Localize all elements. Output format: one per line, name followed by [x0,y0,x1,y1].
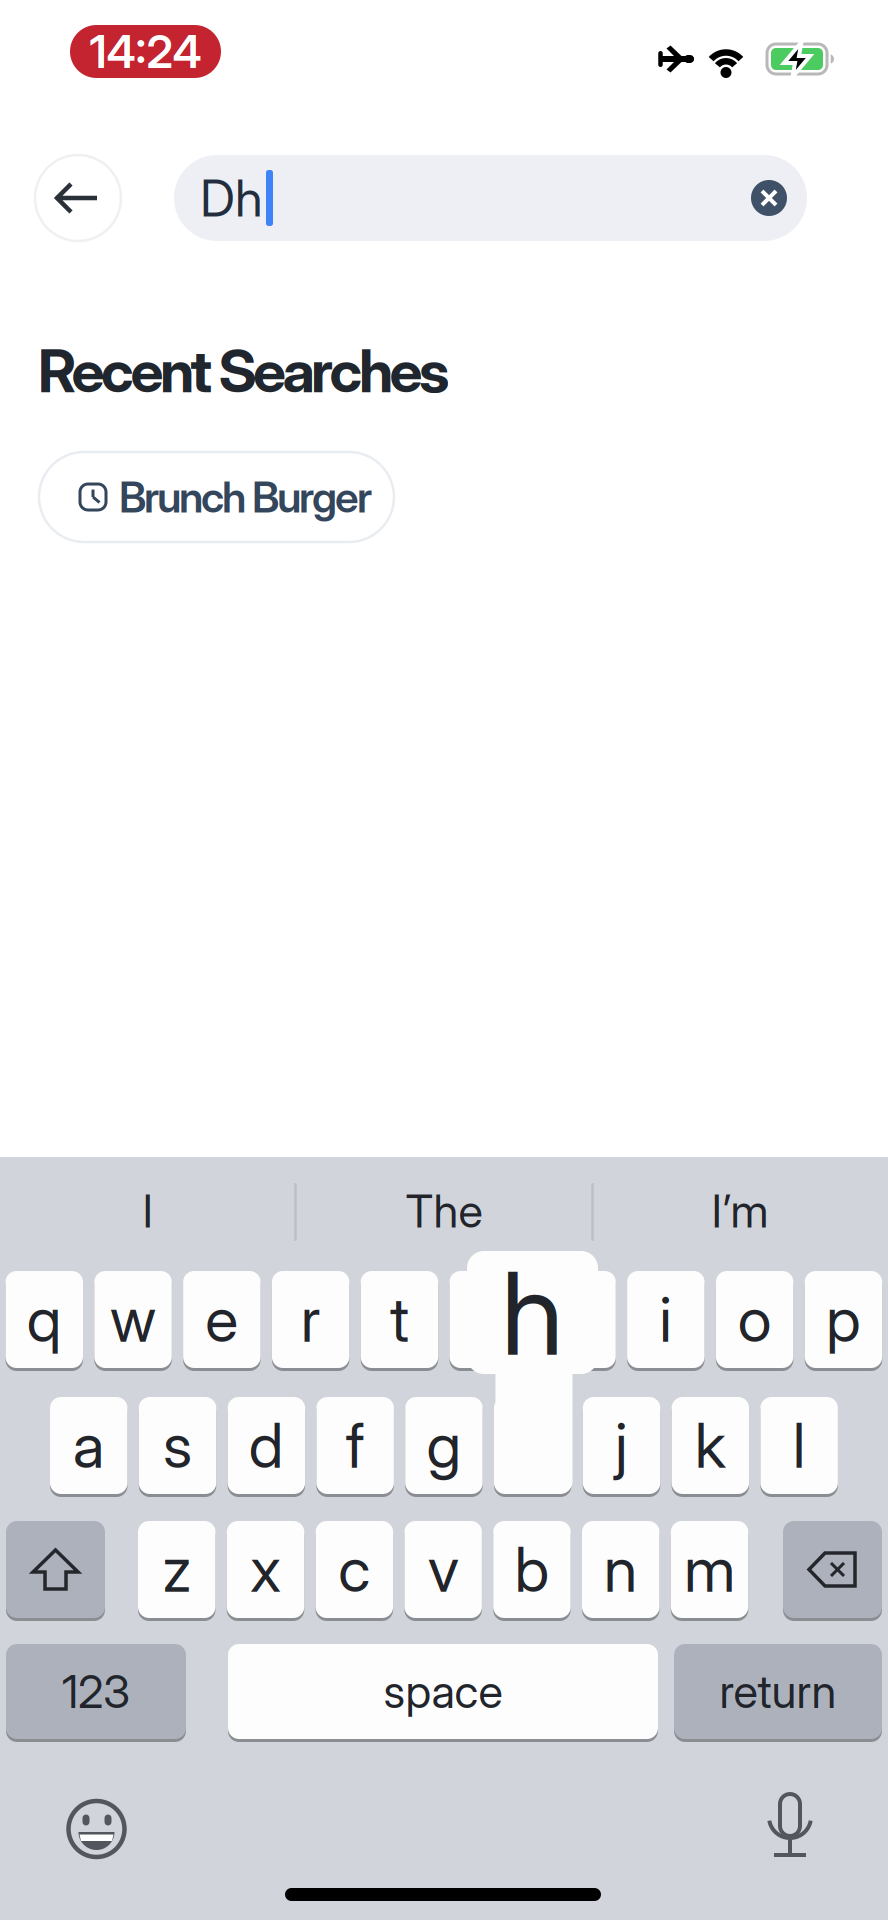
button[interactable]: a [50,1397,127,1494]
button[interactable]: I’m [600,1169,880,1253]
staticText: s [163,1409,192,1482]
button[interactable]: i [627,1271,705,1368]
button[interactable]: l [760,1397,838,1494]
button[interactable]: Brunch Burger [39,452,394,542]
button[interactable]: d [228,1397,305,1494]
button[interactable]: g [405,1397,483,1494]
button[interactable]: y [449,1271,527,1368]
staticText: a [73,1409,105,1482]
button[interactable]: t [361,1271,438,1368]
staticText: 14:24 [89,25,201,78]
staticText: The [405,1184,482,1238]
staticText: return [719,1665,836,1718]
button[interactable]: c [316,1521,393,1618]
button[interactable]: j [583,1397,660,1494]
staticText: z [162,1533,191,1606]
staticText: I [142,1184,153,1238]
staticText: q [27,1283,62,1356]
staticText: d [249,1409,284,1482]
staticText: space [383,1665,502,1718]
button[interactable]: 123 [6,1644,186,1739]
button[interactable]: n [582,1521,659,1618]
staticText: v [428,1533,459,1606]
button[interactable]: Dictation [765,1793,815,1859]
staticText: Recent Searches [38,336,450,406]
button[interactable]: o [716,1271,793,1368]
staticText: n [604,1533,638,1606]
button[interactable]: space [228,1644,658,1739]
button[interactable]: Clear search text [751,180,787,216]
staticText: m [684,1533,735,1606]
staticText: g [426,1409,461,1482]
button[interactable]: s [139,1397,216,1494]
staticText: t [390,1283,409,1356]
button[interactable]: b [493,1521,571,1618]
button[interactable]: q [5,1271,83,1368]
staticText: w [110,1283,156,1356]
staticText: o [738,1283,772,1356]
button[interactable]: m [671,1521,748,1618]
button[interactable]: k [672,1397,749,1494]
staticText: p [826,1283,861,1356]
staticText: k [695,1409,726,1482]
button[interactable]: Shift [6,1521,105,1618]
staticText: f [346,1409,365,1482]
staticText: i [659,1283,672,1356]
button[interactable]: Emoji keyboard [66,1799,126,1859]
button[interactable]: u [538,1271,616,1368]
staticText: c [338,1533,370,1606]
button[interactable]: p [805,1271,882,1368]
staticText: 123 [62,1665,130,1718]
staticText: j [615,1409,628,1482]
button[interactable]: z [138,1521,215,1618]
button[interactable]: I [8,1169,288,1253]
staticText: Brunch Burger [119,472,372,522]
staticText: h [501,1245,564,1381]
staticText: x [250,1533,281,1606]
staticText: b [514,1533,549,1606]
button[interactable]: return [674,1644,882,1739]
staticText: r [301,1283,321,1356]
staticText: e [205,1283,238,1356]
button[interactable]: r [272,1271,349,1368]
button[interactable]: f [316,1397,394,1494]
button[interactable]: h [494,1397,571,1494]
button[interactable]: w [94,1271,172,1368]
button[interactable]: The [304,1169,584,1253]
button[interactable]: x [227,1521,304,1618]
button[interactable]: v [404,1521,482,1618]
button[interactable]: Delete [783,1521,882,1618]
staticText: l [793,1409,806,1482]
button[interactable]: e [183,1271,261,1368]
staticText: I’m [711,1184,768,1238]
button[interactable]: Back [35,155,121,241]
staticText: Dh [200,168,263,228]
